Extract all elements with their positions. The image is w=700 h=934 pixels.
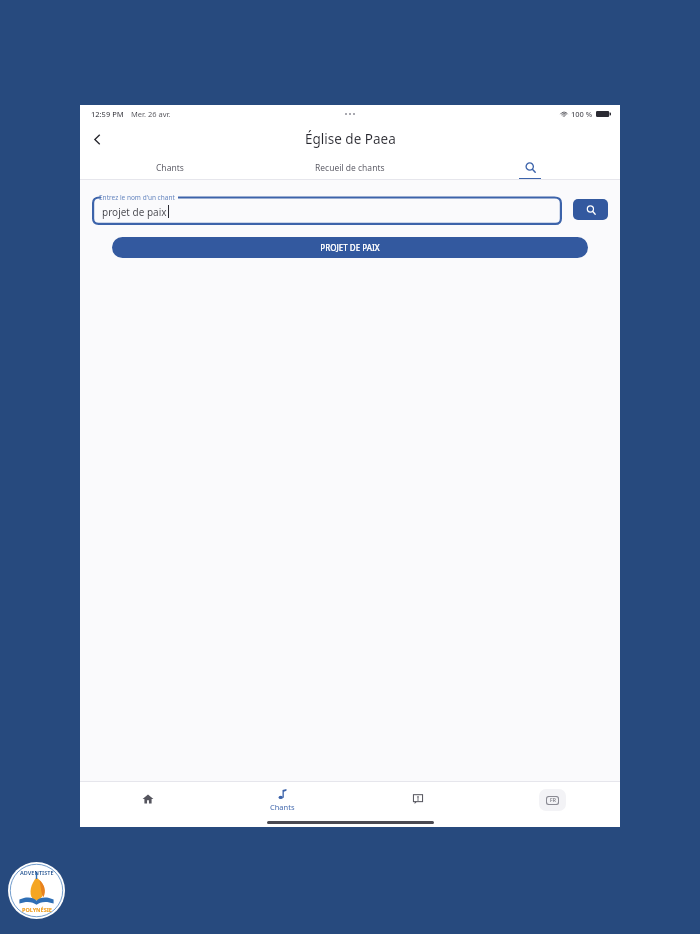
- staticText: POLYNÉSIE: [22, 906, 52, 913]
- button[interactable]: Home: [80, 783, 215, 827]
- staticText: projet de paix: [102, 205, 167, 219]
- staticText: 12:59 PM: [91, 109, 124, 119]
- button[interactable]: Language FR: [539, 789, 566, 811]
- button[interactable]: Search: [573, 199, 608, 220]
- button[interactable]: Feedback: [350, 783, 485, 827]
- staticText: 100 %: [571, 109, 593, 119]
- button[interactable]: Adventiste Polynésie logo: [8, 862, 65, 919]
- staticText: Chants: [270, 802, 295, 812]
- button[interactable]: PROJET DE PAIX: [112, 237, 588, 258]
- staticText: Entrez le nom d'un chant: [99, 193, 175, 202]
- staticText: Recueil de chants: [315, 162, 385, 174]
- button[interactable]: Recueil de chants: [260, 155, 440, 180]
- button[interactable]: Search tab: [440, 155, 620, 180]
- staticText: ADVENTISTE: [20, 869, 54, 876]
- button[interactable]: Chants: [80, 155, 260, 180]
- staticText: PROJET DE PAIX: [320, 242, 380, 253]
- staticText: FR: [550, 797, 556, 804]
- button[interactable]: Chants: [215, 783, 350, 827]
- staticText: Mer. 26 avr.: [131, 109, 171, 119]
- staticText: Chants: [156, 162, 184, 174]
- button[interactable]: Back: [84, 126, 110, 152]
- staticText: Église de Paea: [305, 130, 396, 148]
